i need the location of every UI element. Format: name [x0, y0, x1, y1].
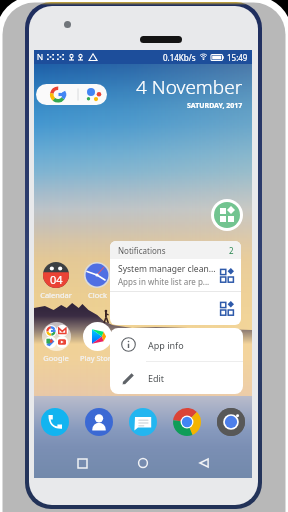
- staticText: Notifications: [118, 245, 166, 256]
- button[interactable]: 4 November: [114, 74, 243, 111]
- staticText: Apps in white list are p...: [118, 276, 210, 287]
- button[interactable]: Recent apps: [69, 450, 95, 476]
- button[interactable]: Camera: [216, 407, 246, 437]
- staticText: App info: [148, 339, 184, 351]
- button[interactable]: System manager clean...: [118, 259, 234, 291]
- button[interactable]: System manager: [211, 199, 243, 231]
- staticText: Google: [43, 353, 69, 363]
- staticText: Clock: [88, 290, 107, 300]
- button[interactable]: Phone: [40, 407, 70, 437]
- button[interactable]: Google search: [36, 84, 107, 105]
- button[interactable]: Google: [34, 322, 78, 363]
- staticText: 2: [229, 245, 234, 256]
- staticText: System manager clean...: [118, 263, 216, 275]
- staticText: Calendar: [40, 290, 72, 300]
- button[interactable]: Contacts: [84, 407, 114, 437]
- staticText: 0.14Kb/s: [163, 52, 196, 63]
- staticText: SATURDAY, 2017: [187, 101, 243, 111]
- button[interactable]: Clock: [75, 262, 119, 300]
- button[interactable]: Home: [130, 450, 156, 476]
- button[interactable]: Edit: [121, 362, 243, 394]
- staticText: 04: [50, 272, 63, 287]
- button[interactable]: Back: [191, 450, 217, 476]
- staticText: 4 November: [136, 74, 243, 100]
- button[interactable]: Chrome: [172, 407, 202, 437]
- button[interactable]: 04: [34, 262, 78, 300]
- button[interactable]: Messages: [128, 407, 158, 437]
- staticText: 15:49: [227, 52, 248, 63]
- button[interactable]: [118, 292, 234, 324]
- staticText: Play Store: [80, 353, 115, 363]
- staticText: Edit: [148, 372, 165, 384]
- button[interactable]: Play Store: [75, 322, 119, 363]
- button[interactable]: App info: [121, 328, 243, 361]
- button[interactable]: Notifications: [118, 241, 234, 259]
